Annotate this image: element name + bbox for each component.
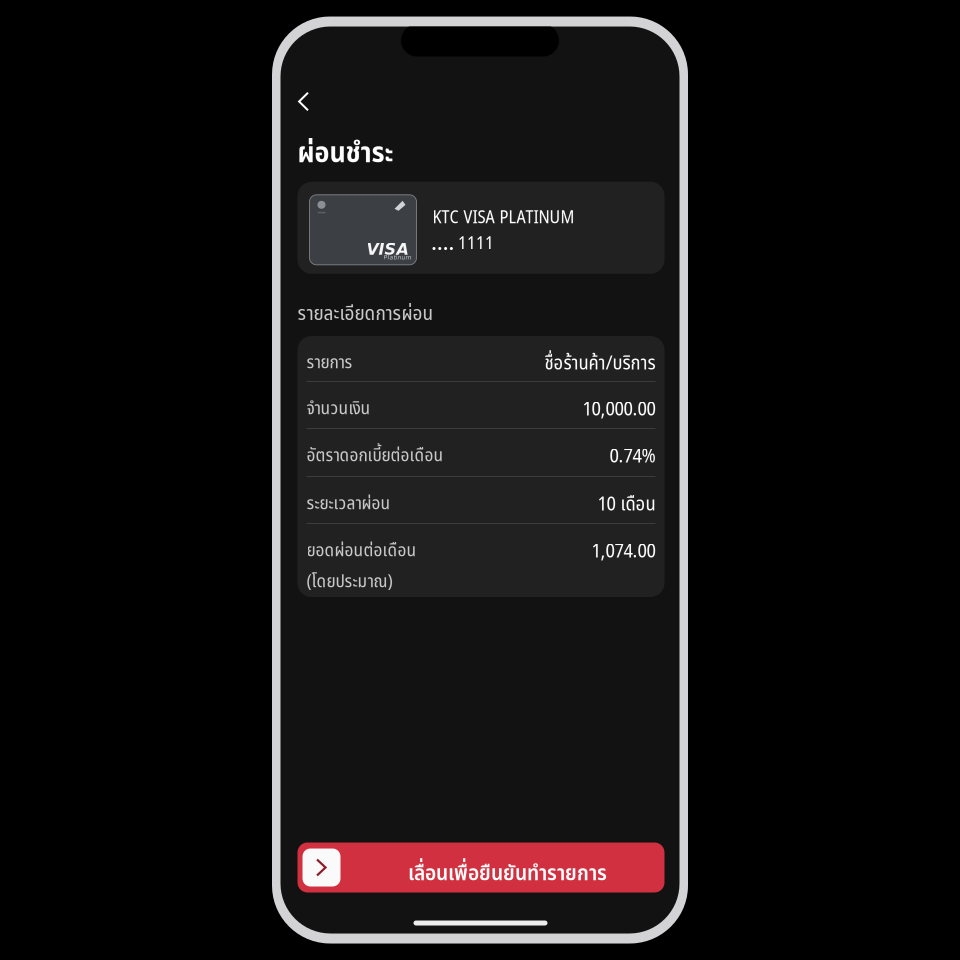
staticText: 0.74% xyxy=(609,442,655,471)
staticText: 10 เดือน xyxy=(597,490,655,519)
staticText: รายการ xyxy=(306,349,352,376)
staticText: เลื่อนเพื่อยืนยันทำรายการ xyxy=(408,857,607,890)
staticText: อัตราดอกเบี้ยต่อเดือน xyxy=(306,442,443,469)
staticText: VISA xyxy=(366,240,408,258)
staticText: ระยะเวลาผ่อน xyxy=(306,490,390,517)
button[interactable]: VISA xyxy=(297,182,664,274)
button[interactable]: Back xyxy=(280,86,323,116)
staticText: รายละเอียดการผ่อน xyxy=(297,299,433,329)
staticText: (โดยประมาณ) xyxy=(306,568,392,595)
staticText: 1111 xyxy=(458,231,494,257)
staticText: Platinum xyxy=(383,254,411,261)
button[interactable]: เลื่อนเพื่อยืนยันทำรายการ xyxy=(297,842,664,892)
staticText: ผ่อนชำระ xyxy=(297,132,393,175)
staticText: ยอดผ่อนต่อเดือน xyxy=(306,537,416,564)
staticText: ชื่อร้านค้า/บริการ xyxy=(544,349,655,378)
staticText: 1,074.00 xyxy=(591,537,655,566)
staticText: KTC VISA PLATINUM xyxy=(432,205,574,231)
staticText: จำนวนเงิน xyxy=(306,395,370,422)
staticText: 10,000.00 xyxy=(582,395,655,424)
